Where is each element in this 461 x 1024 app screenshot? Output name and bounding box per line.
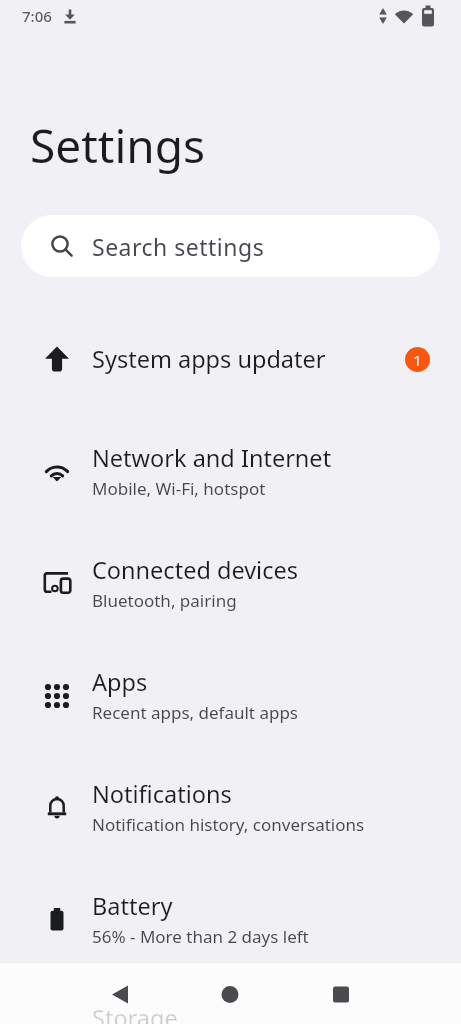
staticText: Bluetooth, pairing <box>92 589 237 612</box>
staticText: 1 <box>413 350 422 370</box>
staticText: Recent apps, default apps <box>92 701 299 724</box>
button[interactable]: Network and Internet <box>0 415 461 527</box>
staticText: 56% - More than 2 days left <box>92 925 309 948</box>
staticText: Notifications <box>92 778 232 810</box>
staticText: Apps <box>92 666 148 698</box>
staticText: Mobile, Wi-Fi, hotspot <box>92 477 266 500</box>
staticText: Network and Internet <box>92 442 332 474</box>
button[interactable]: Apps <box>0 639 461 751</box>
button[interactable] <box>153 963 307 1024</box>
staticText: System apps updater <box>92 343 326 375</box>
staticText: 7:06 <box>22 6 52 26</box>
button[interactable] <box>0 963 153 1024</box>
staticText: Storage <box>92 1002 178 1024</box>
staticText: Notification history, conversations <box>92 813 365 836</box>
staticText: Settings <box>30 114 206 177</box>
button[interactable]: Battery <box>0 863 461 975</box>
staticText: Battery <box>92 890 173 922</box>
button[interactable]: Notifications <box>0 751 461 863</box>
staticText: Connected devices <box>92 554 298 586</box>
button[interactable]: Connected devices <box>0 527 461 639</box>
button[interactable] <box>307 963 461 1024</box>
button[interactable]: Storage <box>0 975 461 1024</box>
button[interactable]: Search settings <box>21 215 440 277</box>
button[interactable]: System apps updater <box>0 303 461 415</box>
staticText: Search settings <box>92 231 265 262</box>
